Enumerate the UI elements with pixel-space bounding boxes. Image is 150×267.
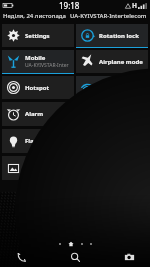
staticText: Mobile network: [25, 54, 71, 62]
staticText: Flashlight: [25, 137, 55, 145]
button[interactable]: Mobile network: [2, 50, 74, 74]
button[interactable]: Flashlight: [2, 129, 74, 154]
staticText: Hotspot: [25, 84, 50, 92]
staticText: UA-KYIVSTAR-Inter: [25, 62, 69, 69]
staticText: Settings: [25, 32, 50, 40]
button[interactable]: Airplane mode: [76, 50, 148, 74]
staticText: Alarm: [25, 110, 44, 118]
button[interactable]: Search: [66, 248, 84, 266]
button[interactable]: Wi-Fi: [76, 76, 148, 100]
staticText: Rotation lock: [99, 32, 139, 40]
staticText: 19:18: [59, 0, 80, 11]
button[interactable]: Phone: [12, 248, 30, 266]
button[interactable]: Collapse quick settings: [0, 183, 150, 192]
staticText: Неділя, 24 листопада: [3, 12, 66, 20]
staticText: UA-KYIVSTAR-Intertelecom: [70, 12, 147, 20]
staticText: H: [132, 1, 137, 10]
button[interactable]: Camera: [120, 248, 138, 266]
button[interactable]: Settings: [2, 24, 74, 48]
button[interactable]: Alarm: [2, 102, 74, 127]
button[interactable]: Hotspot: [2, 76, 74, 100]
button[interactable]: Rotation lock: [76, 24, 148, 48]
staticText: Airplane mode: [99, 58, 143, 66]
button[interactable]: Device monitor: [2, 156, 74, 181]
